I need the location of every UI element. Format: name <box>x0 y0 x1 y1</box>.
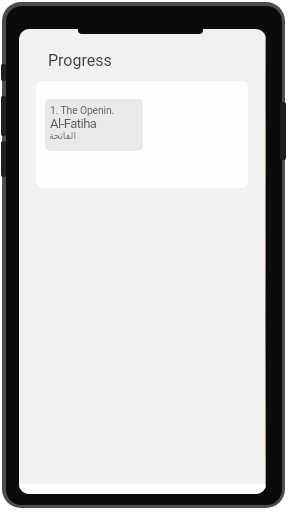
button[interactable]: 1. The Openin. <box>45 99 143 151</box>
staticText: Progress <box>48 51 112 70</box>
staticText: 1. The Openin. <box>50 104 115 116</box>
button[interactable]: 1. The Openin. <box>36 81 248 188</box>
staticText: Al-Fatiha <box>50 116 97 131</box>
staticText: الفاتحة <box>49 130 77 141</box>
